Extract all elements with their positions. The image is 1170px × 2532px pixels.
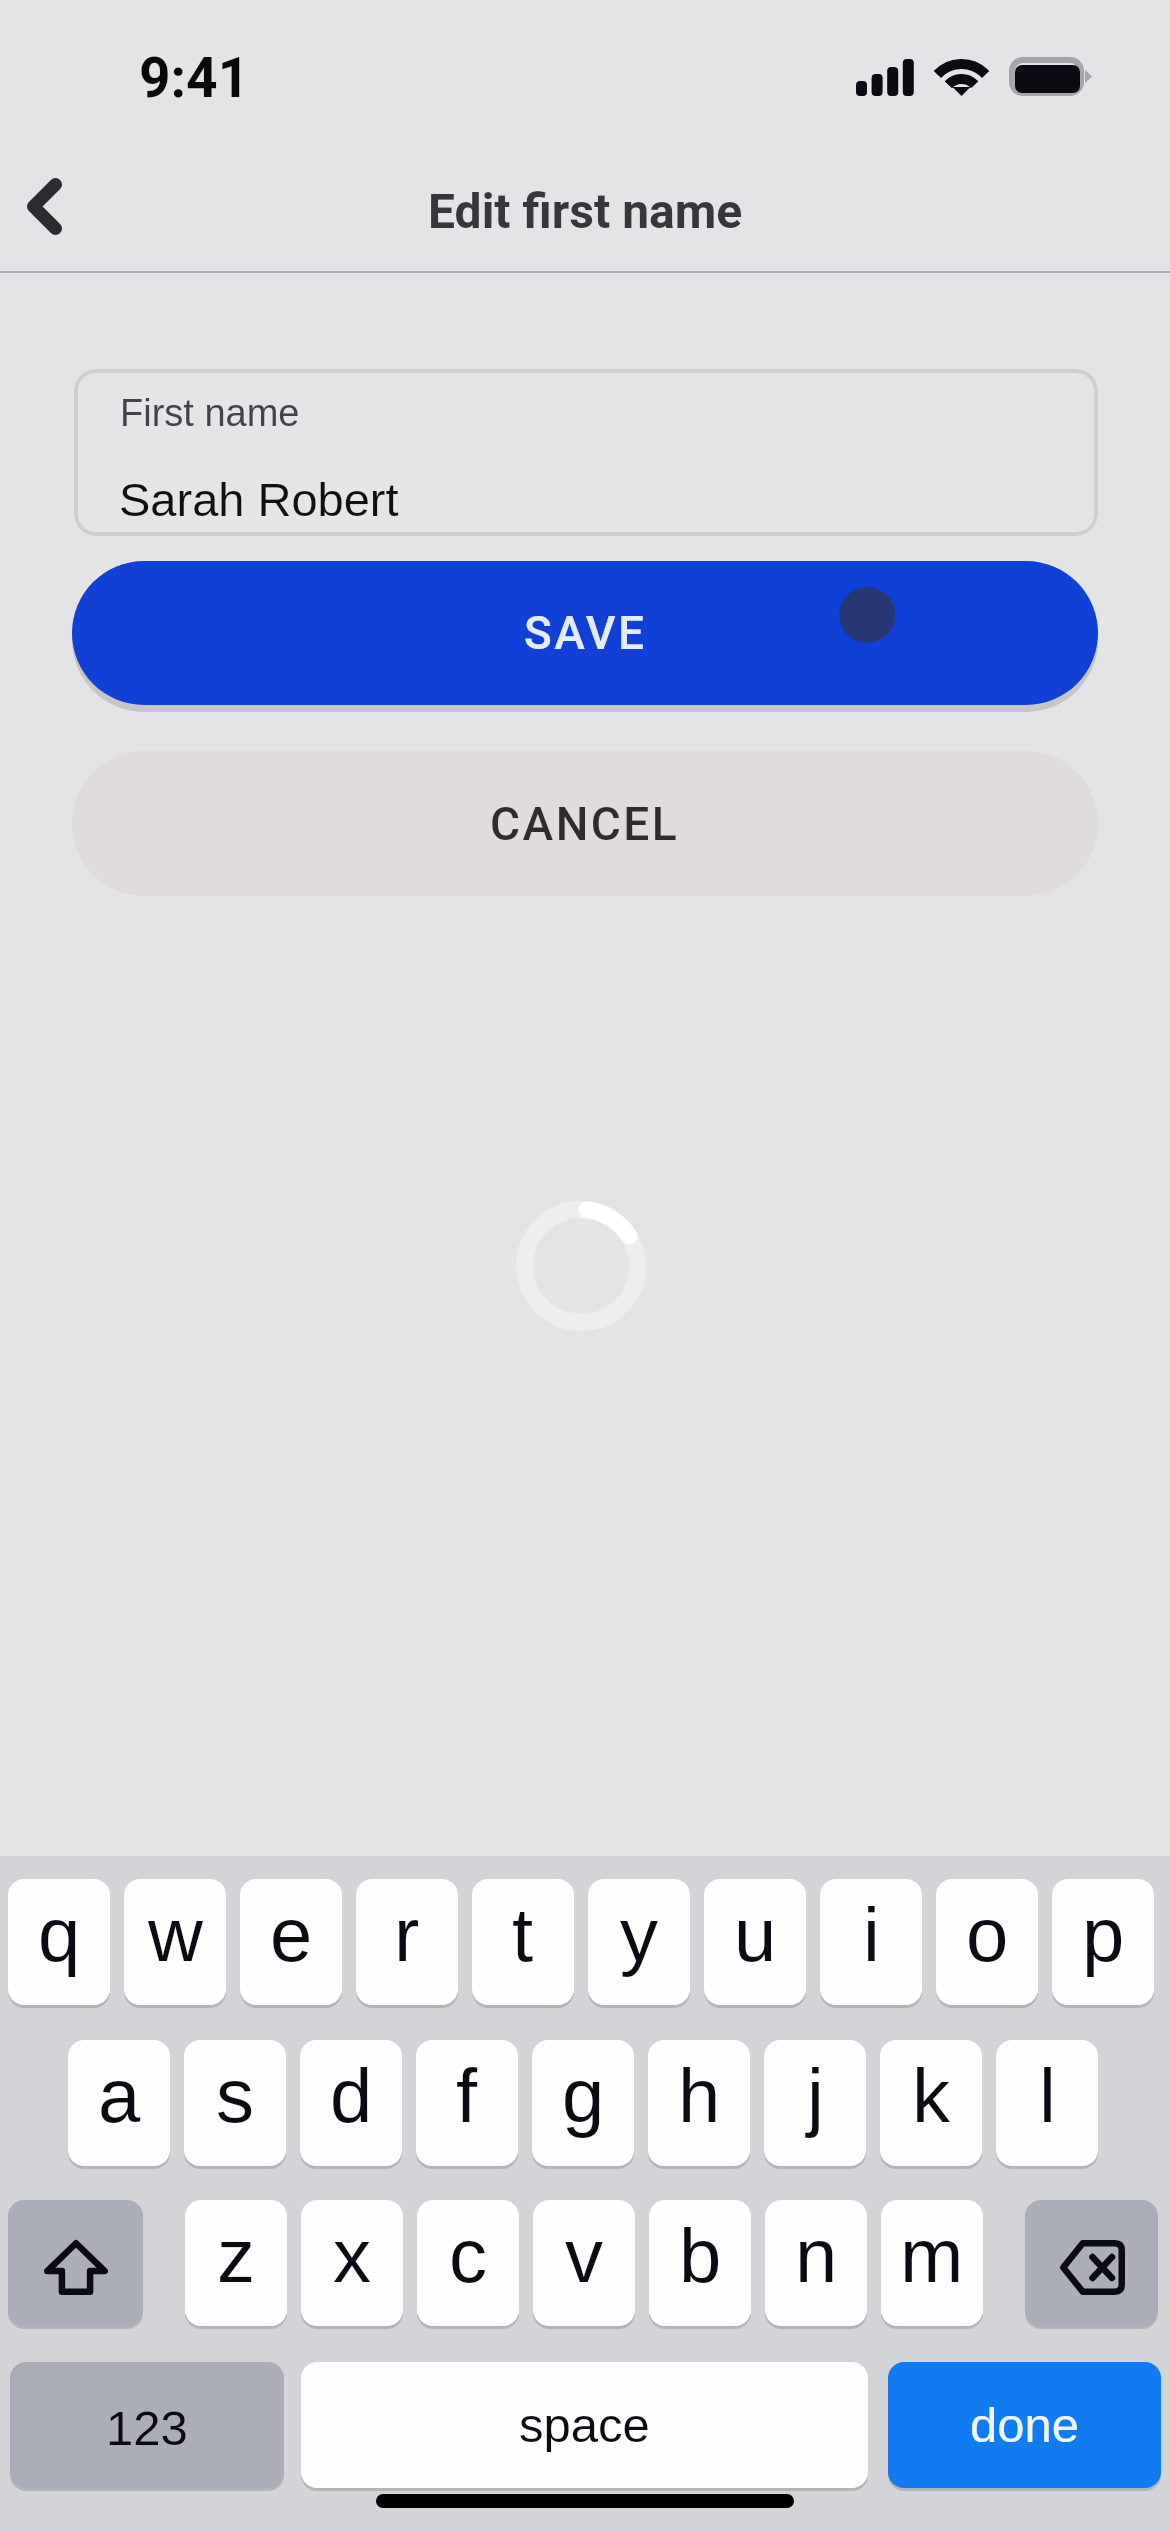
button[interactable]: space bbox=[301, 2362, 868, 2488]
staticText: d bbox=[330, 2053, 373, 2138]
button[interactable]: done bbox=[888, 2362, 1161, 2488]
button[interactable]: First name bbox=[74, 369, 1098, 536]
staticText: u bbox=[734, 1892, 777, 1977]
button[interactable]: j bbox=[764, 2040, 866, 2166]
button[interactable]: d bbox=[300, 2040, 402, 2166]
button[interactable]: l bbox=[996, 2040, 1098, 2166]
staticText: x bbox=[333, 2213, 371, 2298]
button[interactable]: m bbox=[881, 2200, 983, 2326]
button[interactable]: a bbox=[68, 2040, 170, 2166]
button[interactable]: o bbox=[936, 1879, 1038, 2005]
button[interactable]: x bbox=[301, 2200, 403, 2326]
button[interactable]: e bbox=[240, 1879, 342, 2005]
button[interactable]: u bbox=[704, 1879, 806, 2005]
staticText: m bbox=[900, 2213, 964, 2298]
button[interactable]: q bbox=[8, 1879, 110, 2005]
button[interactable]: y bbox=[588, 1879, 690, 2005]
staticText: h bbox=[678, 2053, 721, 2138]
button[interactable]: n bbox=[765, 2200, 867, 2326]
button[interactable]: t bbox=[472, 1879, 574, 2005]
staticText: e bbox=[270, 1892, 313, 1977]
button[interactable]: s bbox=[184, 2040, 286, 2166]
button[interactable]: p bbox=[1052, 1879, 1154, 2005]
button[interactable]: Back bbox=[0, 150, 112, 273]
button[interactable]: c bbox=[417, 2200, 519, 2326]
button[interactable]: g bbox=[532, 2040, 634, 2166]
staticText: y bbox=[620, 1892, 658, 1977]
staticText: r bbox=[394, 1892, 420, 1977]
staticText: a bbox=[98, 2053, 141, 2138]
staticText: SAVE bbox=[524, 606, 647, 660]
staticText: b bbox=[679, 2213, 722, 2298]
button[interactable]: h bbox=[648, 2040, 750, 2166]
button[interactable]: r bbox=[356, 1879, 458, 2005]
staticText: c bbox=[449, 2213, 487, 2298]
button[interactable]: f bbox=[416, 2040, 518, 2166]
staticText: z bbox=[217, 2213, 255, 2298]
staticText: w bbox=[148, 1892, 203, 1977]
button[interactable]: 123 bbox=[10, 2362, 284, 2488]
staticText: l bbox=[1039, 2053, 1056, 2138]
staticText: o bbox=[966, 1892, 1009, 1977]
button[interactable]: SAVE bbox=[72, 561, 1098, 705]
button[interactable]: CANCEL bbox=[72, 751, 1098, 896]
staticText: k bbox=[912, 2053, 950, 2138]
staticText: First name bbox=[120, 392, 300, 434]
staticText: j bbox=[807, 2053, 824, 2138]
staticText: g bbox=[562, 2053, 605, 2138]
button[interactable]: w bbox=[124, 1879, 226, 2005]
staticText: n bbox=[795, 2213, 838, 2298]
staticText: i bbox=[863, 1892, 880, 1977]
staticText: Sarah Robert bbox=[119, 473, 399, 526]
staticText: f bbox=[456, 2053, 478, 2138]
staticText: CANCEL bbox=[490, 797, 680, 851]
button[interactable]: z bbox=[185, 2200, 287, 2326]
button[interactable]: v bbox=[533, 2200, 635, 2326]
staticText: Edit first name bbox=[428, 183, 743, 239]
staticText: done bbox=[970, 2398, 1080, 2453]
staticText: p bbox=[1082, 1892, 1125, 1977]
staticText: t bbox=[512, 1892, 534, 1977]
button[interactable]: i bbox=[820, 1879, 922, 2005]
staticText: q bbox=[38, 1892, 81, 1977]
staticText: 9:41 bbox=[139, 46, 250, 110]
button[interactable]: b bbox=[649, 2200, 751, 2326]
staticText: s bbox=[216, 2053, 254, 2138]
button[interactable]: Shift bbox=[8, 2200, 143, 2326]
staticText: 123 bbox=[106, 2401, 188, 2456]
staticText: space bbox=[519, 2398, 650, 2453]
button[interactable]: Backspace bbox=[1025, 2200, 1158, 2326]
staticText: v bbox=[565, 2213, 603, 2298]
button[interactable]: k bbox=[880, 2040, 982, 2166]
